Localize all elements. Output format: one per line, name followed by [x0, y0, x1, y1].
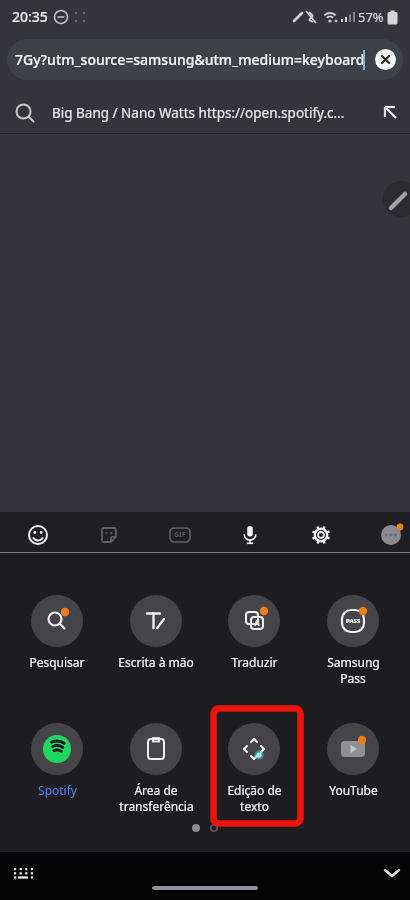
staticText: Pesquisar: [29, 654, 85, 670]
button[interactable]: GIF: [162, 517, 198, 552]
button[interactable]: Edição de: [205, 723, 303, 814]
staticText: Escrita à mão: [118, 654, 194, 670]
button[interactable]: Spotify: [8, 723, 106, 798]
staticText: Traduzir: [231, 654, 278, 670]
button[interactable]: [91, 517, 127, 552]
staticText: Spotify: [38, 782, 77, 798]
staticText: transferência: [119, 798, 194, 814]
staticText: Big Bang / Nano Watts https://open.spoti…: [52, 104, 382, 122]
button[interactable]: [374, 855, 410, 891]
button[interactable]: [20, 517, 56, 552]
button[interactable]: PASS: [304, 595, 402, 686]
button[interactable]: Área de: [107, 723, 205, 814]
button[interactable]: [374, 517, 410, 552]
staticText: 57%: [358, 8, 384, 26]
staticText: PASS: [346, 617, 361, 625]
staticText: Edição de: [227, 782, 282, 798]
button[interactable]: 7Gy?utm_source=samsung&utm_medium=keyboa…: [7, 39, 403, 80]
button[interactable]: [383, 181, 410, 217]
staticText: Pass: [340, 670, 366, 686]
button[interactable]: [5, 855, 41, 891]
staticText: Área de: [134, 782, 178, 798]
staticText: 7Gy?utm_source=samsung&utm_medium=keyboa…: [15, 50, 363, 69]
button[interactable]: [303, 517, 339, 552]
staticText: texto: [240, 798, 269, 814]
button[interactable]: [375, 49, 396, 70]
button[interactable]: Traduzir: [205, 595, 303, 670]
button[interactable]: Escrita à mão: [107, 595, 205, 670]
staticText: Samsung: [327, 654, 380, 670]
staticText: GIF: [174, 530, 186, 540]
staticText: 20:35: [12, 7, 48, 26]
button[interactable]: YouTube: [304, 723, 402, 798]
button[interactable]: Pesquisar: [8, 595, 106, 670]
button[interactable]: Big Bang / Nano Watts https://open.spoti…: [0, 93, 410, 133]
staticText: YouTube: [329, 782, 378, 798]
button[interactable]: [232, 517, 268, 552]
